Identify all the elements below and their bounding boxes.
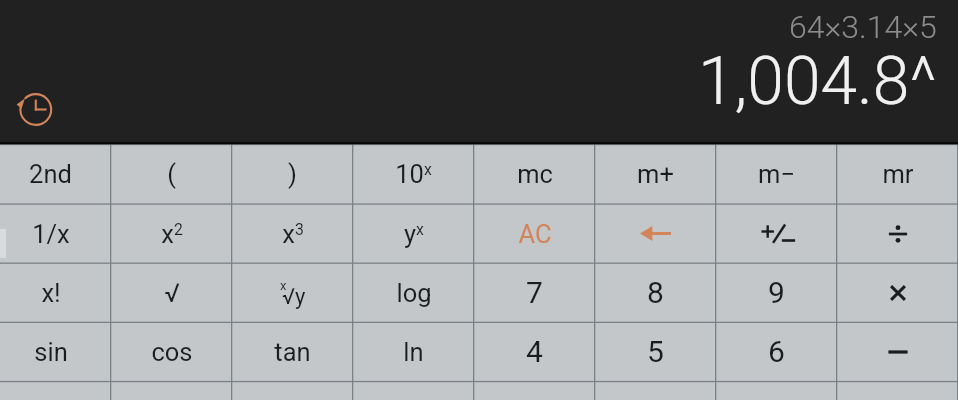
button[interactable]: m−: [716, 143, 837, 204]
button[interactable]: 3: [716, 382, 837, 400]
button[interactable]: [353, 382, 474, 400]
staticText: 5: [647, 334, 664, 369]
button[interactable]: x2: [111, 204, 232, 263]
button[interactable]: mr: [837, 143, 958, 204]
button[interactable]: yx: [353, 204, 474, 263]
button[interactable]: 9: [716, 263, 837, 322]
button[interactable]: x!: [0, 263, 111, 322]
staticText: 1/x: [32, 219, 70, 249]
staticText: √: [164, 278, 180, 308]
button[interactable]: √: [111, 263, 232, 322]
staticText: yx: [404, 219, 424, 249]
staticText: ln: [403, 337, 424, 367]
button[interactable]: Backspace: [595, 204, 716, 263]
staticText: cos: [151, 337, 193, 367]
staticText: sin: [34, 337, 68, 367]
staticText: log: [396, 278, 432, 308]
button[interactable]: [111, 382, 232, 400]
button[interactable]: 6: [716, 322, 837, 381]
button[interactable]: (: [111, 143, 232, 204]
button[interactable]: tan: [232, 322, 353, 381]
button[interactable]: 10x: [353, 143, 474, 204]
button[interactable]: 4: [474, 322, 595, 381]
button[interactable]: sin: [0, 322, 111, 381]
staticText: x: [280, 278, 287, 293]
staticText: √y: [282, 284, 306, 310]
staticText: 10x: [395, 159, 432, 189]
staticText: x2: [161, 219, 183, 249]
staticText: m−: [758, 159, 795, 189]
button[interactable]: mc: [474, 143, 595, 204]
button[interactable]: 8: [595, 263, 716, 322]
staticText: x3: [282, 219, 304, 249]
button[interactable]: 1/x: [0, 204, 111, 263]
button[interactable]: Minus: [837, 322, 958, 381]
staticText: 2nd: [29, 159, 72, 189]
staticText: 64×3.14×5: [789, 8, 937, 46]
button[interactable]: 2: [595, 382, 716, 400]
button[interactable]: History: [11, 85, 59, 133]
staticText: mr: [882, 159, 914, 189]
button[interactable]: ): [232, 143, 353, 204]
button[interactable]: m+: [595, 143, 716, 204]
button[interactable]: Multiply: [837, 263, 958, 322]
button[interactable]: 7: [474, 263, 595, 322]
staticText: m+: [637, 159, 674, 189]
button[interactable]: log: [353, 263, 474, 322]
staticText: 6: [768, 334, 785, 369]
staticText: tan: [274, 337, 311, 367]
staticText: 7: [526, 275, 543, 310]
button[interactable]: [232, 382, 353, 400]
staticText: 9: [768, 275, 785, 310]
button[interactable]: AC: [474, 204, 595, 263]
staticText: 1,004.8^: [698, 43, 937, 120]
button[interactable]: Plus minus: [716, 204, 837, 263]
staticText: 8: [647, 275, 664, 310]
button[interactable]: ln: [353, 322, 474, 381]
staticText: ): [288, 159, 297, 189]
button[interactable]: 1: [474, 382, 595, 400]
button[interactable]: Divide: [837, 204, 958, 263]
staticText: (: [167, 159, 176, 189]
button[interactable]: x root y: [232, 263, 353, 322]
button[interactable]: cos: [111, 322, 232, 381]
button[interactable]: 5: [595, 322, 716, 381]
button[interactable]: x3: [232, 204, 353, 263]
staticText: mc: [517, 159, 553, 189]
button[interactable]: [0, 382, 111, 400]
staticText: x!: [41, 278, 61, 308]
button[interactable]: 2nd: [0, 143, 111, 204]
staticText: AC: [518, 219, 552, 249]
button[interactable]: Plus: [837, 382, 958, 400]
staticText: 4: [526, 334, 543, 369]
